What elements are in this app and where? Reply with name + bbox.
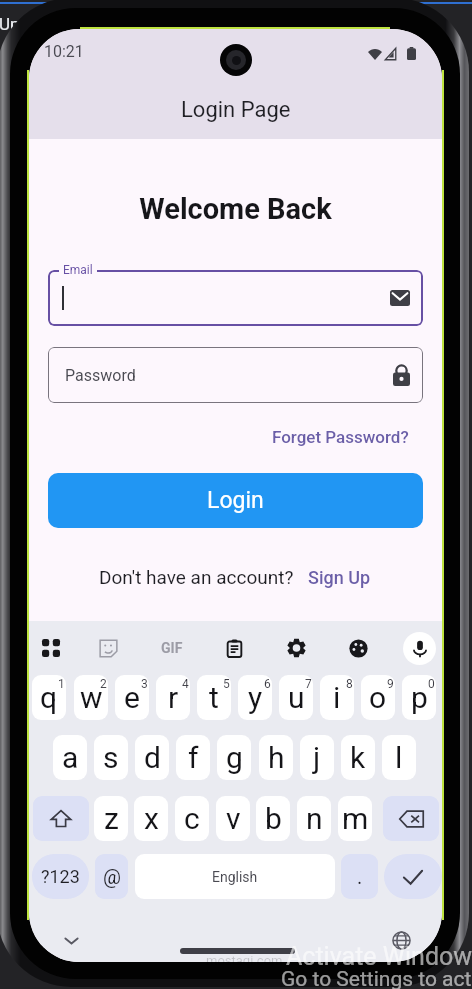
button[interactable]: Stickers (87, 624, 129, 672)
button[interactable]: z (94, 796, 128, 841)
staticText: q (40, 680, 58, 715)
staticText: ?123 (41, 866, 80, 887)
staticText: b (265, 801, 282, 836)
staticText: Login (207, 487, 264, 514)
button[interactable]: Password (48, 347, 423, 403)
staticText: Welcome Back (139, 192, 332, 226)
staticText: 7 (305, 677, 312, 691)
button[interactable]: m (338, 796, 372, 841)
staticText: English (212, 869, 258, 885)
button[interactable]: a (53, 735, 87, 780)
button[interactable]: k (341, 735, 375, 780)
staticText: Up (0, 14, 20, 34)
button[interactable]: v (216, 796, 250, 841)
button[interactable]: Settings (275, 624, 317, 672)
staticText: 6 (264, 677, 271, 691)
button[interactable]: Enter (384, 854, 442, 899)
staticText: l (395, 740, 403, 775)
button[interactable]: i (320, 675, 354, 720)
button[interactable]: Backspace (383, 796, 439, 841)
button[interactable] (48, 270, 423, 326)
button[interactable]: h (259, 735, 293, 780)
button[interactable]: o (361, 675, 395, 720)
staticText: k (350, 740, 366, 775)
button[interactable]: ?123 (32, 854, 89, 899)
staticText: 0 (428, 677, 435, 691)
staticText: g (226, 740, 243, 775)
staticText: Don't have an account? (99, 566, 294, 588)
button[interactable]: c (175, 796, 209, 841)
staticText: . (357, 865, 363, 888)
staticText: f (188, 740, 199, 775)
staticText: Go to Settings to activate (281, 967, 472, 989)
button[interactable]: Hide keyboard (58, 927, 84, 953)
staticText: Email (63, 263, 93, 277)
button[interactable]: Shift (33, 796, 89, 841)
button[interactable]: r (156, 675, 190, 720)
button[interactable]: @ (95, 854, 128, 899)
button[interactable]: Change language (388, 927, 414, 953)
button[interactable]: j (300, 735, 334, 780)
staticText: Activate Windows (286, 942, 472, 971)
staticText: t (209, 680, 219, 715)
button[interactable]: t (197, 675, 231, 720)
staticText: w (80, 680, 103, 715)
button[interactable]: Theme (337, 624, 379, 672)
button[interactable]: f (176, 735, 210, 780)
button[interactable]: y (238, 675, 272, 720)
button[interactable]: Voice input (398, 624, 440, 672)
staticText: v (226, 801, 241, 836)
button[interactable]: u (279, 675, 313, 720)
staticText: n (306, 801, 323, 836)
staticText: s (103, 740, 119, 775)
staticText: e (124, 680, 140, 715)
button[interactable]: b (256, 796, 290, 841)
staticText: z (104, 801, 119, 836)
staticText: 4 (182, 677, 189, 691)
button[interactable]: p (402, 675, 436, 720)
staticText: r (168, 680, 179, 715)
staticText: GIF (161, 640, 183, 656)
staticText: p (411, 680, 428, 715)
button[interactable]: l (382, 735, 416, 780)
staticText: a (62, 740, 79, 775)
button[interactable]: English (135, 854, 335, 899)
staticText: c (184, 801, 200, 836)
button[interactable]: . (341, 854, 378, 899)
staticText: y (248, 680, 263, 715)
button[interactable]: x (134, 796, 168, 841)
staticText: h (268, 740, 285, 775)
button[interactable]: Sign Up (306, 567, 373, 588)
staticText: 8 (346, 677, 353, 691)
staticText: Password (65, 366, 136, 385)
button[interactable]: e (115, 675, 149, 720)
staticText: 10:21 (44, 42, 84, 61)
button[interactable]: n (297, 796, 331, 841)
staticText: m (342, 801, 369, 836)
staticText: j (313, 740, 321, 775)
button[interactable]: g (217, 735, 251, 780)
staticText: u (288, 680, 305, 715)
staticText: x (144, 801, 159, 836)
staticText: 2 (100, 677, 107, 691)
staticText: o (369, 680, 387, 715)
button[interactable]: s (94, 735, 128, 780)
staticText: @ (103, 865, 121, 888)
staticText: i (333, 680, 341, 715)
button[interactable]: Forget Password? (270, 427, 411, 447)
staticText: 1 (58, 677, 65, 691)
button[interactable]: Login (48, 473, 423, 528)
staticText: mostaqi.com (206, 953, 283, 968)
staticText: 9 (387, 677, 394, 691)
button[interactable]: d (135, 735, 169, 780)
button[interactable]: GIF (151, 624, 193, 672)
staticText: 5 (223, 677, 230, 691)
staticText: d (144, 740, 161, 775)
button[interactable]: Apps (30, 624, 72, 672)
button[interactable]: Clipboard (213, 624, 255, 672)
staticText: Login Page (181, 97, 291, 123)
button[interactable]: w (74, 675, 108, 720)
staticText: 3 (141, 677, 148, 691)
button[interactable]: q (32, 675, 66, 720)
